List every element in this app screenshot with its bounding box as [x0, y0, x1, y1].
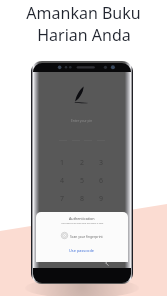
staticText: Authentication [69, 216, 95, 221]
staticText: You need to be sure that this diary is s… [61, 222, 104, 225]
button[interactable]: Back [102, 258, 112, 268]
staticText: 1 [60, 158, 65, 168]
staticText: 6 [99, 176, 104, 186]
staticText: 7 [60, 194, 65, 204]
button[interactable]: Use passcode [69, 248, 95, 253]
staticText: Use passcode [69, 248, 95, 253]
staticText: 4 [60, 176, 65, 186]
staticText: 2 [80, 158, 85, 168]
staticText: Harian Anda [37, 24, 131, 46]
staticText: Enter your pin [71, 119, 93, 123]
button[interactable]: Scan your fingerprint [61, 232, 103, 239]
staticText: 3 [99, 158, 104, 168]
staticText: Scan your fingerprint [70, 234, 103, 238]
staticText: 8 [80, 194, 85, 204]
staticText: 9 [99, 194, 104, 204]
staticText: 5 [80, 176, 85, 186]
staticText: Amankan Buku [26, 2, 141, 24]
